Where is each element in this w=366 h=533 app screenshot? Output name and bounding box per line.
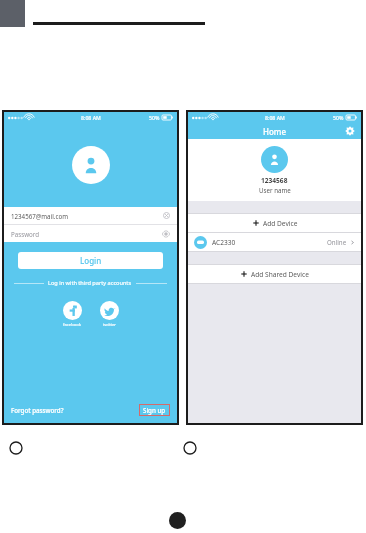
staticText: 50% [333, 114, 344, 121]
button[interactable]: 1234567@mail.com [4, 207, 177, 224]
button[interactable]: Password [4, 225, 177, 242]
button[interactable]: Login [18, 252, 163, 269]
staticText: 1234567@mail.com [11, 212, 163, 220]
other: Clear text [163, 212, 170, 219]
button[interactable]: Add Device [188, 214, 361, 232]
staticText: Login [80, 255, 102, 266]
button[interactable]: facebook [57, 301, 88, 328]
staticText: Password [11, 230, 162, 238]
staticText: Home [263, 126, 287, 137]
staticText: 50% [149, 114, 160, 121]
staticText: Forgot password? [11, 406, 64, 414]
staticText: Add Device [263, 219, 298, 228]
staticText: 8:08 AM [265, 114, 285, 121]
staticText: Online [327, 238, 347, 246]
staticText: facebook [63, 322, 82, 328]
button[interactable]: AC2330 [188, 233, 361, 251]
other: Show password [162, 230, 170, 238]
button[interactable]: Sign up [139, 404, 170, 416]
button[interactable]: Settings [345, 126, 355, 136]
staticText: 1234568 [261, 176, 288, 185]
button[interactable]: twitter [94, 301, 125, 328]
staticText: Add Shared Device [251, 270, 309, 279]
staticText: Log in with third party accounts [48, 279, 132, 287]
staticText: AC2330 [212, 238, 236, 247]
staticText: Sign up [143, 406, 166, 414]
button[interactable]: Add Shared Device [188, 265, 361, 283]
staticText: twitter [103, 322, 116, 328]
staticText: 8:08 AM [81, 114, 101, 121]
staticText: User name [259, 186, 291, 194]
button[interactable]: Forgot password? [11, 406, 64, 414]
